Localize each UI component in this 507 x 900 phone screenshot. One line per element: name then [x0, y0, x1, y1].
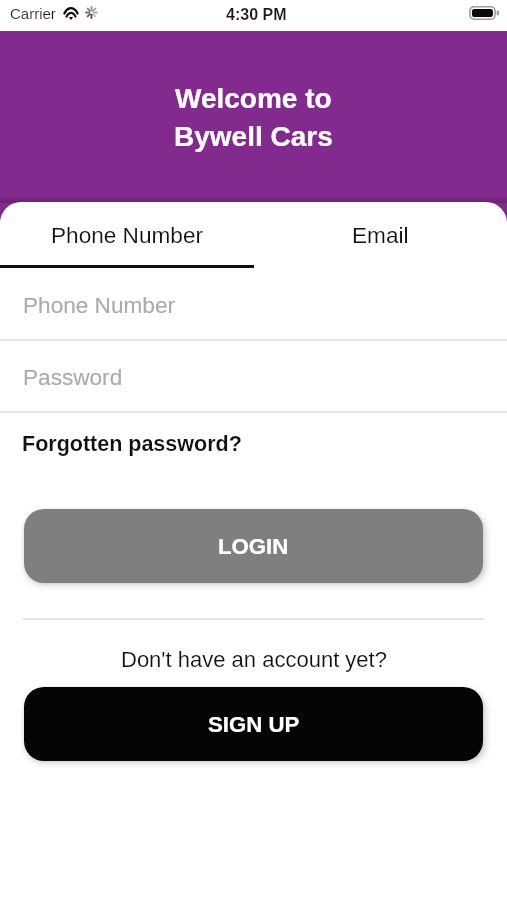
staticText: Phone Number	[51, 223, 203, 248]
button[interactable]: Password	[0, 341, 507, 413]
staticText: SIGN UP	[208, 712, 300, 737]
button[interactable]: Forgotten password?	[22, 426, 242, 462]
button[interactable]: Email	[253, 202, 507, 268]
other: Wi-Fi	[62, 6, 80, 20]
staticText: Welcome to	[175, 83, 332, 114]
staticText: Carrier	[10, 5, 56, 22]
staticText: Don't have an account yet?	[121, 647, 387, 672]
staticText: LOGIN	[218, 534, 289, 559]
staticText: Password	[23, 365, 123, 390]
staticText: Forgotten password?	[22, 432, 242, 456]
button[interactable]: Phone Number	[0, 269, 507, 341]
other: Activity	[86, 7, 97, 18]
button[interactable]: SIGN UP	[24, 687, 483, 761]
other: Battery	[469, 6, 499, 20]
staticText: 4:30 PM	[226, 6, 287, 24]
staticText: Phone Number	[23, 293, 175, 318]
staticText: Bywell Cars	[174, 121, 333, 152]
staticText: Email	[352, 223, 409, 248]
button[interactable]: LOGIN	[24, 509, 483, 583]
button[interactable]: Phone Number	[0, 202, 253, 268]
